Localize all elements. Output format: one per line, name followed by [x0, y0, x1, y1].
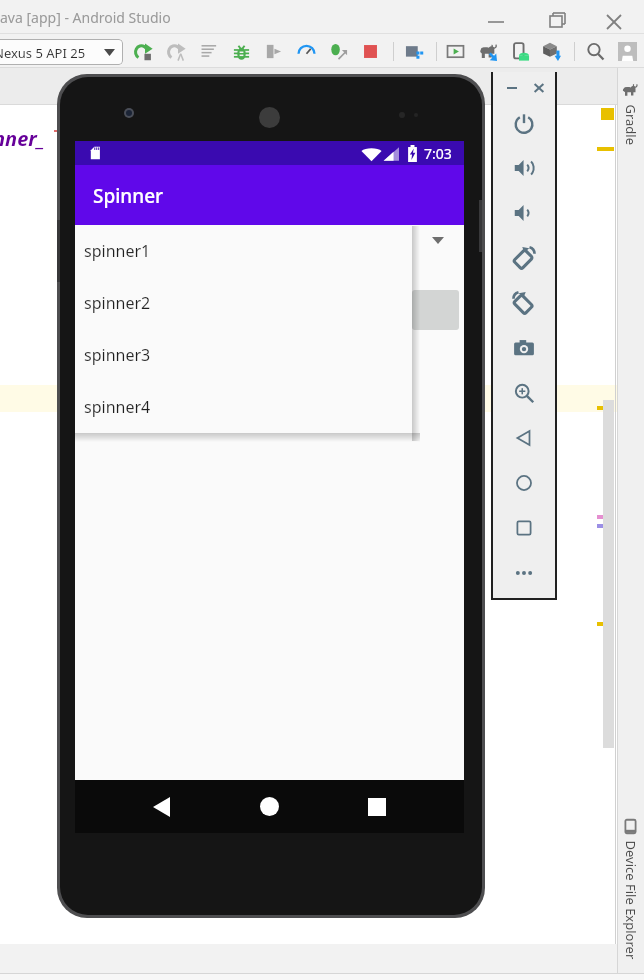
button[interactable]: AVD manager: [442, 36, 468, 66]
button[interactable]: Screenshot: [508, 332, 540, 364]
button[interactable]: Project structure: [401, 36, 427, 66]
button[interactable]: Nexus 5 API 25: [0, 39, 123, 65]
button[interactable]: More: [508, 557, 540, 589]
button[interactable]: Gradle: [617, 78, 644, 218]
button[interactable]: Minimize panel: [502, 78, 522, 98]
button[interactable]: spinner3: [75, 329, 412, 381]
button[interactable]: Debug: [228, 36, 254, 66]
button[interactable]: Download: [538, 36, 564, 66]
staticText: Device File Explorer: [621, 840, 639, 959]
button[interactable]: Back: [137, 780, 185, 833]
button[interactable]: spinner4: [75, 381, 412, 433]
button[interactable]: Zoom: [508, 377, 540, 409]
button[interactable]: Profiler: [293, 36, 319, 66]
staticText: spinner4: [84, 396, 151, 418]
button[interactable]: Restore: [545, 8, 571, 34]
button[interactable]: Overview: [508, 512, 540, 544]
button[interactable]: Rotate left: [508, 242, 540, 274]
staticText: 7:03: [424, 144, 452, 163]
staticText: Nexus 5 API 25: [0, 44, 86, 62]
button[interactable]: Volume down: [508, 197, 540, 229]
staticText: spinner2: [84, 292, 151, 314]
button[interactable]: Home: [245, 780, 293, 833]
staticText: spinner3: [84, 344, 151, 366]
button[interactable]: Stop: [357, 36, 383, 66]
button[interactable]: Home: [508, 467, 540, 499]
button[interactable]: spinner2: [75, 277, 412, 329]
staticText: nner_: [0, 125, 45, 152]
button[interactable]: Back: [508, 422, 540, 454]
button[interactable]: SDK manager: [507, 36, 533, 66]
button[interactable]: Attach debugger: [260, 36, 286, 66]
button[interactable]: Minimize: [484, 10, 508, 34]
staticText: ava [app] - Android Studio: [0, 8, 171, 27]
button[interactable]: Rerun: [130, 36, 156, 66]
button[interactable]: Close panel: [529, 78, 549, 98]
button[interactable]: Attach to process: [325, 36, 351, 66]
button[interactable]: Search: [582, 36, 608, 66]
staticText: spinner1: [84, 240, 151, 262]
button[interactable]: Account: [614, 36, 640, 66]
button[interactable]: [412, 290, 459, 330]
button[interactable]: Show log: [196, 36, 222, 66]
button[interactable]: Sync Gradle: [474, 36, 500, 66]
button[interactable]: Rotate right: [508, 287, 540, 319]
button[interactable]: spinner1: [75, 225, 412, 277]
button[interactable]: Close: [600, 8, 628, 36]
button[interactable]: Device File Explorer: [617, 814, 644, 959]
button[interactable]: Recents: [353, 780, 401, 833]
button[interactable]: Rerun failed: [163, 36, 189, 66]
button[interactable]: Volume up: [508, 152, 540, 184]
staticText: Gradle: [621, 104, 639, 145]
button[interactable]: Power: [508, 108, 540, 140]
staticText: Spinner: [93, 183, 164, 209]
